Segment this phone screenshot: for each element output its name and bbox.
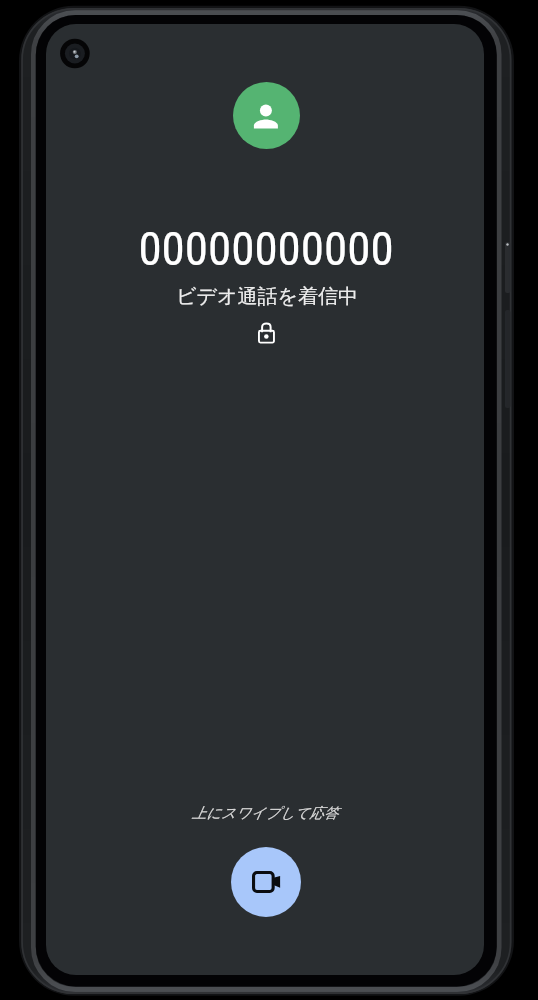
staticText: ビデオ通話を着信中 xyxy=(48,284,484,975)
button[interactable]: Answer video call xyxy=(231,847,301,917)
staticText: 00000000000 xyxy=(47,221,484,975)
staticText: 上にスワイプして応答 xyxy=(46,804,484,975)
